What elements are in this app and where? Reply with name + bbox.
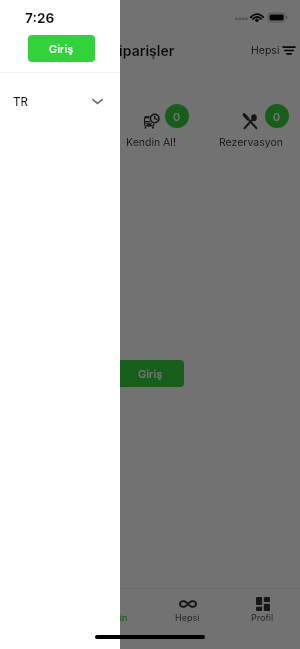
staticText: Hepsi (175, 612, 200, 623)
staticText: Profil (251, 612, 274, 623)
other: Profile (256, 597, 270, 611)
button[interactable]: TR (0, 73, 120, 130)
button[interactable]: Profile (225, 589, 300, 649)
staticText: Kendin (98, 612, 128, 623)
staticText: Rezervasyon (219, 136, 283, 149)
button[interactable]: Giriş (28, 35, 95, 62)
staticText: 0 (273, 110, 281, 123)
button[interactable]: Hepsi (243, 39, 300, 62)
staticText: 7:26 (25, 10, 55, 26)
other: All (179, 599, 197, 609)
button[interactable]: Self pick-up (75, 589, 150, 649)
staticText: Giriş (138, 367, 163, 380)
staticText: Siparişler (110, 42, 175, 59)
staticText: Hepsi (251, 44, 280, 57)
button[interactable]: 0 (101, 100, 201, 150)
button[interactable]: Giriş (117, 360, 184, 387)
button[interactable]: 0 (201, 100, 300, 150)
staticText: TR (13, 95, 28, 109)
other: Change language (92, 98, 103, 105)
staticText: Giriş (49, 42, 74, 55)
staticText: 0 (173, 110, 181, 123)
staticText: 7:26 (25, 10, 55, 26)
button[interactable]: All (150, 589, 225, 649)
staticText: Kendin Al! (126, 136, 176, 149)
